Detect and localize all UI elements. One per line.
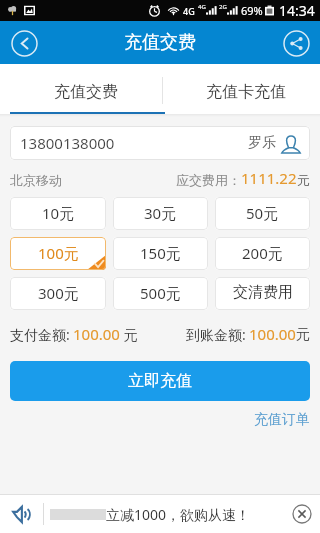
staticText: 立减1000，欲购从速！ (106, 505, 251, 524)
staticText: 100.00 (73, 324, 120, 344)
staticText: 14:34 (279, 1, 315, 20)
staticText: 元 (297, 172, 310, 188)
button[interactable]: 充值卡充值 (163, 64, 320, 114)
button[interactable]: 50元 (215, 197, 310, 230)
button[interactable]: 10元 (10, 197, 106, 230)
staticText: 北京移动 (10, 172, 62, 188)
staticText: 支付金额: (10, 325, 70, 344)
staticText: 到账金额: (186, 325, 246, 344)
staticText: 10元 (42, 203, 75, 223)
button[interactable]: 立即充值 (10, 361, 310, 401)
button[interactable]: 13800138000 (10, 126, 310, 160)
staticText: 充值卡充值 (206, 82, 286, 102)
staticText: 应交费用： (176, 172, 241, 188)
button[interactable]: 300元 (10, 277, 106, 310)
staticText: 200元 (242, 243, 283, 263)
button[interactable]: 500元 (113, 277, 208, 310)
staticText: 充值交费 (124, 31, 196, 54)
staticText: 充值交费 (54, 82, 118, 102)
button[interactable]: Sound (9, 502, 33, 526)
button[interactable]: 交清费用 (215, 277, 310, 310)
button[interactable]: 100元 (10, 237, 106, 270)
button[interactable]: 150元 (113, 237, 208, 270)
staticText: 1111.22 (241, 168, 297, 188)
staticText: 13800138000 (20, 133, 115, 153)
staticText: 100.00 (249, 324, 296, 344)
staticText: 300元 (38, 283, 79, 303)
button[interactable]: Share (281, 28, 311, 58)
staticText: 交清费用 (233, 283, 293, 302)
button[interactable]: Back (9, 28, 39, 58)
staticText: 50元 (246, 203, 279, 223)
staticText: 罗乐 (248, 134, 276, 152)
staticText: 4G (198, 3, 206, 11)
button[interactable]: 充值交费 (0, 64, 162, 114)
staticText: 2G (219, 3, 227, 11)
button[interactable]: 30元 (113, 197, 208, 230)
staticText: 500元 (140, 283, 181, 303)
staticText: 立即充值 (128, 371, 192, 391)
staticText: 100元 (38, 243, 79, 263)
staticText: 元 (296, 326, 310, 344)
staticText: 69% (241, 3, 263, 18)
button[interactable]: Close (290, 502, 314, 526)
staticText: 4G (183, 5, 195, 17)
staticText: 元 (120, 325, 138, 344)
button[interactable]: 200元 (215, 237, 310, 270)
staticText: 30元 (144, 203, 177, 223)
staticText: 150元 (140, 243, 181, 263)
button[interactable]: 充值订单 (254, 411, 310, 429)
